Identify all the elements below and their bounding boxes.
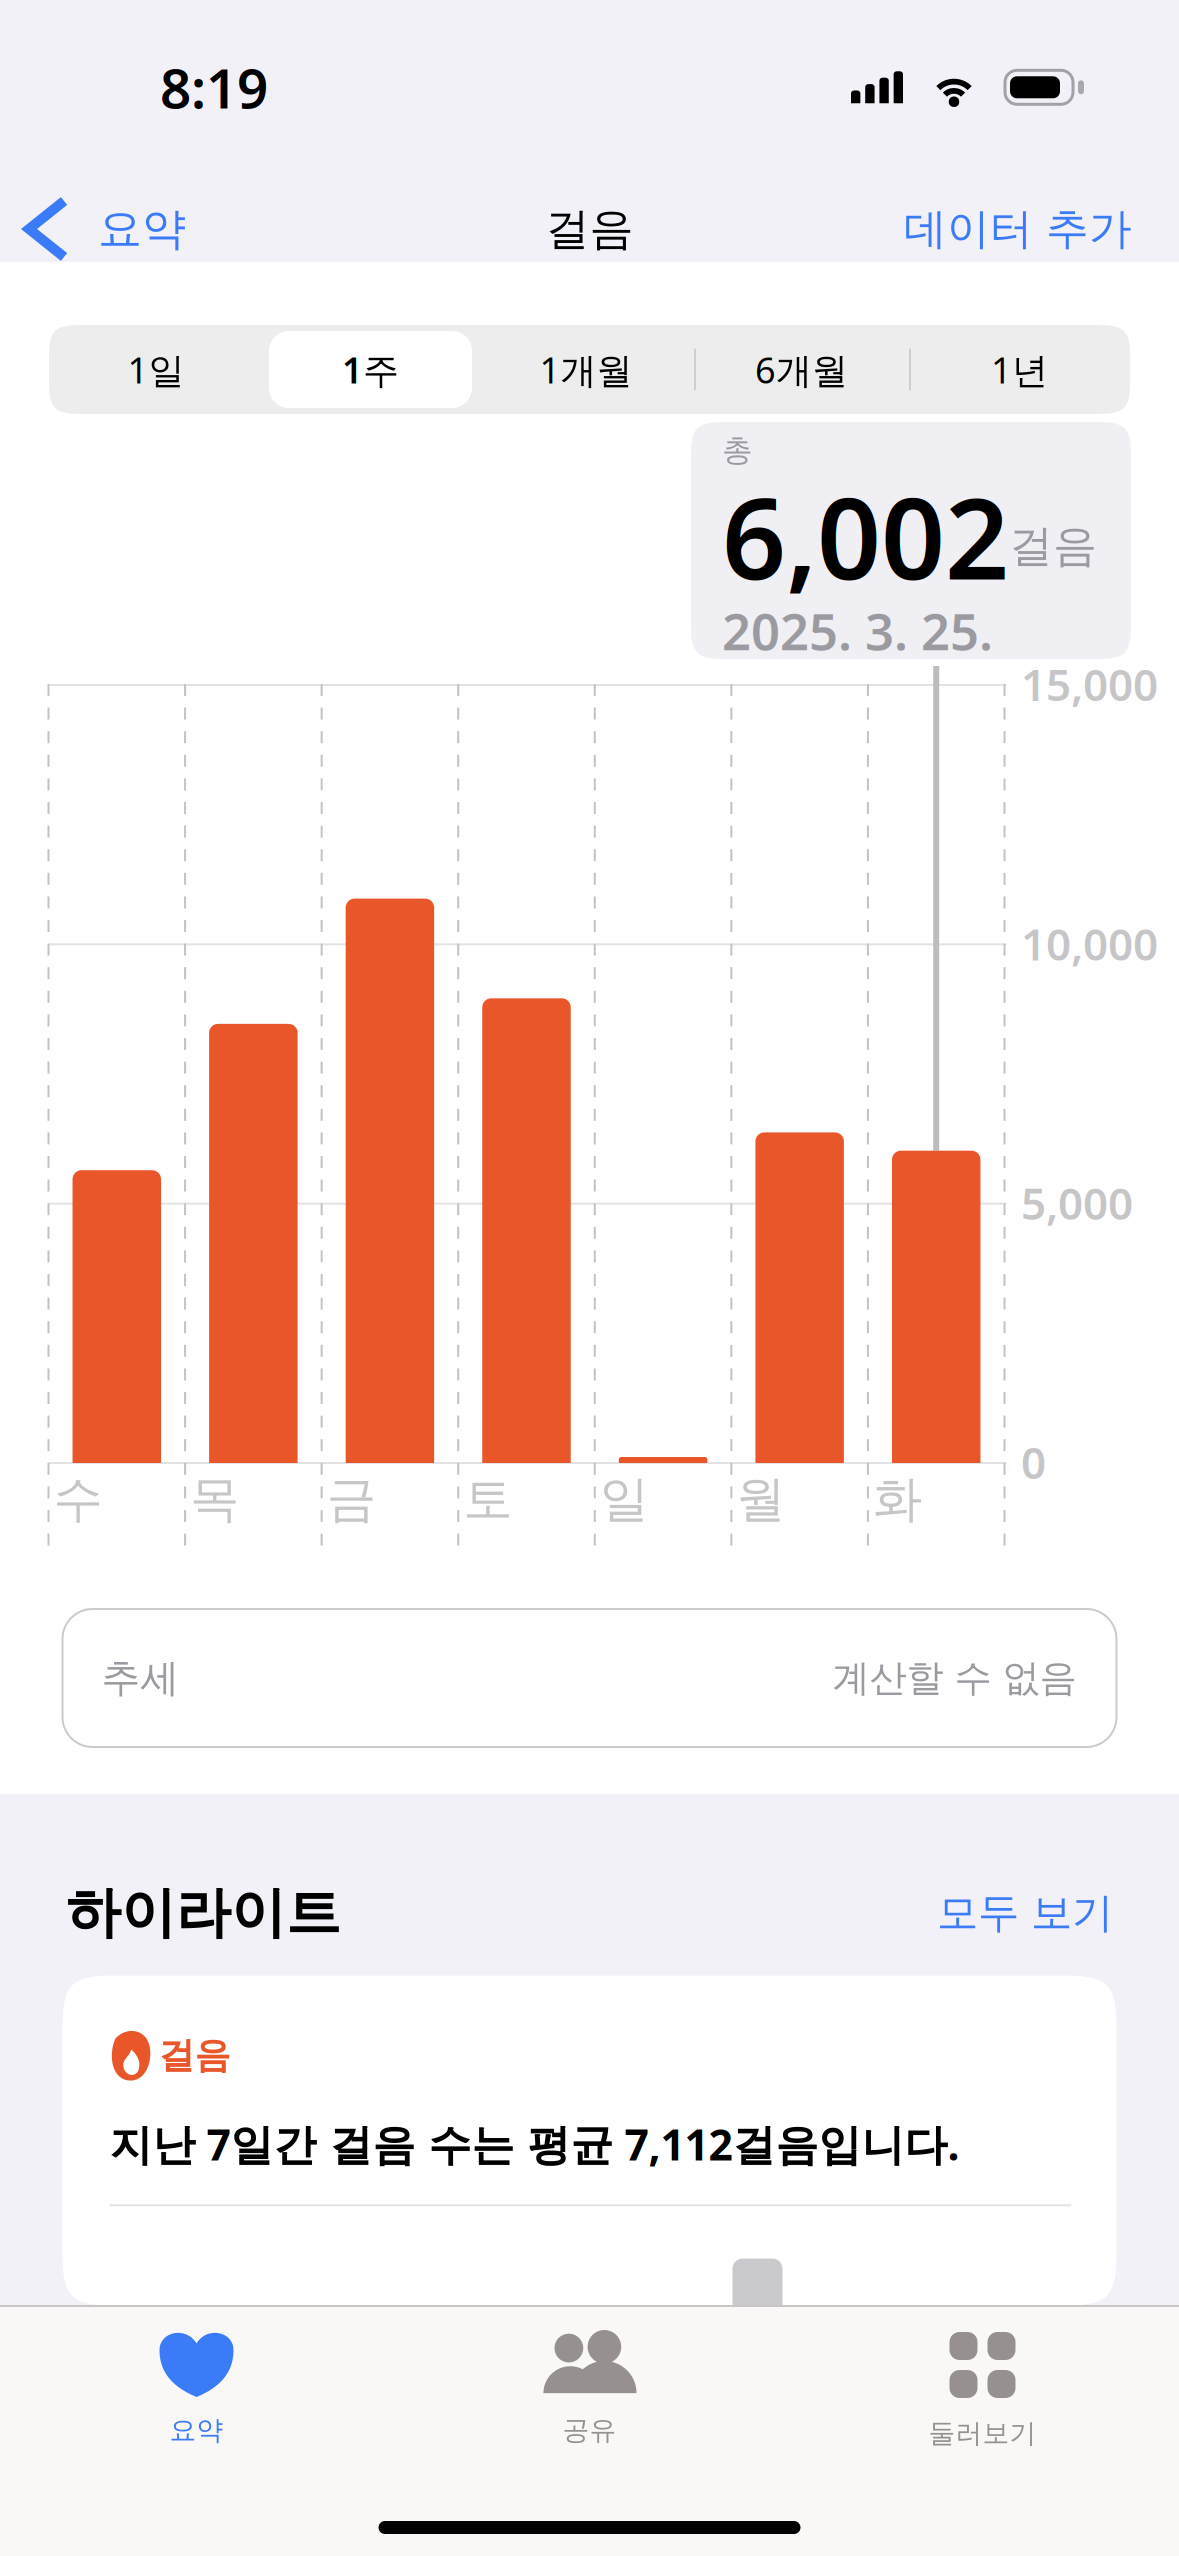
staticText: 금 [327,1469,376,1530]
staticText: 걸음 [1009,519,1097,573]
staticText: 데이터 추가 [904,203,1132,255]
button[interactable]: 둘러보기 [786,2307,1179,2455]
button[interactable]: 공유 [393,2307,786,2455]
staticText: 걸음 [545,202,633,256]
staticText: 0 [1021,1433,1046,1491]
staticText: 요약 [98,202,186,256]
staticText: 수 [53,1469,102,1530]
button[interactable]: 모두 보기 [937,1888,1113,1938]
button[interactable]: 6개월 [694,325,909,414]
button[interactable]: 추세 [62,1609,1116,1747]
button[interactable]: 데이터 추가 [904,185,1179,273]
staticText: 1주 [342,346,399,393]
staticText: 6개월 [755,346,848,393]
button[interactable]: 1년 [909,325,1130,414]
staticText: 하이라이트 [66,1879,341,1946]
staticText: 추세 [101,1654,179,1702]
staticText: 공유 [562,2414,616,2447]
staticText: 10,000 [1021,914,1158,972]
staticText: 둘러보기 [928,2417,1036,2450]
staticText: 월 [736,1469,785,1530]
staticText: 토 [463,1469,512,1530]
staticText: 1일 [127,346,184,393]
staticText: 총 [722,431,753,469]
button[interactable]: 1주 [263,325,478,414]
staticText: 목 [190,1469,239,1530]
button[interactable]: 요약 [0,178,186,280]
staticText: 요약 [169,2414,223,2447]
staticText: 1년 [991,346,1048,393]
staticText: 6,002 [722,462,1009,610]
staticText: 모두 보기 [937,1888,1113,1938]
staticText: 15,000 [1021,655,1158,713]
button[interactable]: 요약 [0,2307,393,2455]
staticText: 일 [600,1469,649,1530]
staticText: 1개월 [539,346,632,393]
staticText: 계산할 수 없음 [832,1655,1076,1701]
staticText: 화 [873,1469,922,1530]
staticText: 걸음 [158,2033,230,2078]
staticText: 지난 7일간 걸음 수는 평균 7,112걸음입니다. [109,2116,959,2172]
button[interactable]: 걸음 [62,1976,1116,2306]
button[interactable]: 1일 [49,325,263,414]
staticText: 5,000 [1021,1173,1133,1232]
staticText: 8:19 [160,51,268,124]
button[interactable]: 1개월 [478,325,694,414]
staticText: 2025. 3. 25. [722,597,993,664]
